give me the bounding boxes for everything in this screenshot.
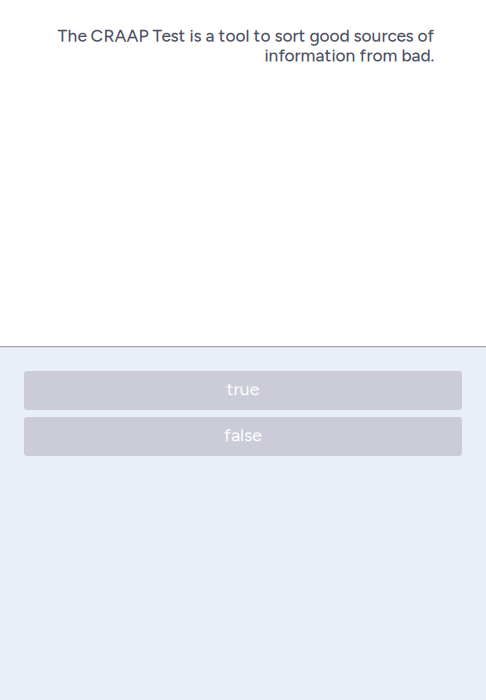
staticText: true	[226, 379, 259, 399]
button[interactable]: false	[24, 417, 462, 456]
button[interactable]: true	[24, 371, 462, 410]
staticText: The CRAAP Test is a tool to sort good so…	[57, 26, 434, 65]
staticText: false	[224, 425, 262, 445]
